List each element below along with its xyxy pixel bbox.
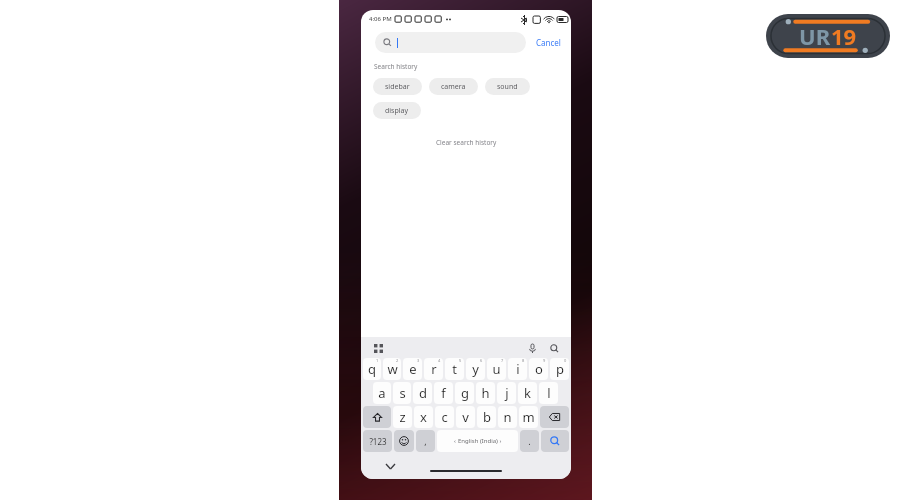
button[interactable]: ?123: [363, 430, 392, 452]
staticText: p: [556, 360, 564, 378]
staticText: s: [399, 384, 406, 402]
button[interactable]: h: [476, 382, 495, 404]
button[interactable]: ,: [416, 430, 435, 452]
button[interactable]: Emoji: [394, 430, 414, 452]
staticText: Clear search history: [436, 138, 497, 147]
button[interactable]: b: [477, 406, 496, 428]
button[interactable]: x: [414, 406, 433, 428]
staticText: a: [378, 384, 386, 402]
staticText: camera: [441, 82, 466, 92]
staticText: b: [483, 408, 491, 426]
button[interactable]: 6: [466, 358, 485, 380]
button[interactable]: l: [539, 382, 558, 404]
staticText: ›: [498, 437, 502, 445]
staticText: ,: [424, 435, 427, 447]
button[interactable]: 3: [403, 358, 422, 380]
staticText: display: [385, 106, 409, 116]
button[interactable]: m: [519, 406, 538, 428]
button[interactable]: k: [518, 382, 537, 404]
staticText: g: [461, 384, 469, 402]
button[interactable]: g: [455, 382, 474, 404]
staticText: 1: [376, 358, 379, 363]
staticText: d: [419, 384, 427, 402]
staticText: k: [524, 384, 531, 402]
button[interactable]: 0: [550, 358, 569, 380]
staticText: 4: [438, 358, 441, 363]
button[interactable]: Hide keyboard: [383, 459, 397, 473]
staticText: c: [441, 408, 448, 426]
button[interactable]: 9: [529, 358, 548, 380]
button[interactable]: 7: [487, 358, 506, 380]
staticText: m: [522, 408, 535, 426]
staticText: l: [547, 384, 551, 402]
staticText: v: [462, 408, 469, 426]
staticText: e: [409, 360, 417, 378]
staticText: 2: [396, 358, 399, 363]
button[interactable]: c: [435, 406, 454, 428]
button[interactable]: Keyboard layouts: [371, 341, 385, 355]
button[interactable]: 1: [363, 358, 381, 380]
staticText: 19: [831, 21, 857, 51]
staticText: u: [492, 360, 501, 378]
button[interactable]: camera: [429, 78, 478, 95]
button[interactable]: Clear search history: [430, 135, 503, 150]
staticText: y: [472, 360, 479, 378]
button[interactable]: f: [434, 382, 453, 404]
staticText: h: [481, 384, 490, 402]
staticText: English (India): [458, 437, 498, 445]
button[interactable]: [375, 32, 526, 53]
staticText: r: [431, 360, 437, 378]
staticText: 4:06 PM: [369, 15, 392, 23]
button[interactable]: v: [456, 406, 475, 428]
button[interactable]: ‹: [437, 430, 518, 452]
staticText: sound: [497, 82, 518, 92]
staticText: 3: [417, 358, 420, 363]
staticText: Search history: [374, 62, 418, 71]
button[interactable]: .: [520, 430, 539, 452]
staticText: Cancel: [536, 37, 561, 48]
button[interactable]: d: [413, 382, 432, 404]
button[interactable]: n: [498, 406, 517, 428]
staticText: w: [387, 360, 398, 378]
staticText: 6: [480, 358, 483, 363]
button[interactable]: j: [497, 382, 516, 404]
button[interactable]: a: [373, 382, 391, 404]
staticText: o: [535, 360, 543, 378]
button[interactable]: Backspace: [540, 406, 569, 428]
staticText: t: [452, 360, 457, 378]
staticText: n: [503, 408, 512, 426]
staticText: x: [420, 408, 427, 426]
button[interactable]: display: [373, 102, 421, 119]
staticText: 5: [459, 358, 462, 363]
staticText: .: [528, 435, 531, 447]
button[interactable]: Search: [541, 430, 569, 452]
staticText: q: [368, 360, 376, 378]
button[interactable]: 2: [383, 358, 401, 380]
button[interactable]: z: [393, 406, 412, 428]
staticText: sidebar: [385, 82, 410, 92]
staticText: z: [399, 408, 406, 426]
button[interactable]: Voice input: [525, 341, 539, 355]
staticText: i: [516, 360, 520, 378]
button[interactable]: Shift: [363, 406, 391, 428]
staticText: f: [441, 384, 446, 402]
staticText: j: [505, 384, 509, 402]
staticText: 9: [543, 358, 546, 363]
button[interactable]: 8: [508, 358, 527, 380]
button[interactable]: Cancel: [535, 34, 562, 51]
staticText: 7: [501, 358, 504, 363]
staticText: UR: [799, 21, 831, 51]
button[interactable]: Search: [547, 341, 561, 355]
button[interactable]: 4: [424, 358, 443, 380]
button[interactable]: sound: [485, 78, 530, 95]
staticText: ?123: [369, 436, 387, 447]
button[interactable]: 5: [445, 358, 464, 380]
staticText: ‹: [454, 437, 458, 445]
staticText: 8: [522, 358, 525, 363]
staticText: 0: [564, 358, 567, 363]
button[interactable]: sidebar: [373, 78, 422, 95]
button[interactable]: s: [393, 382, 411, 404]
